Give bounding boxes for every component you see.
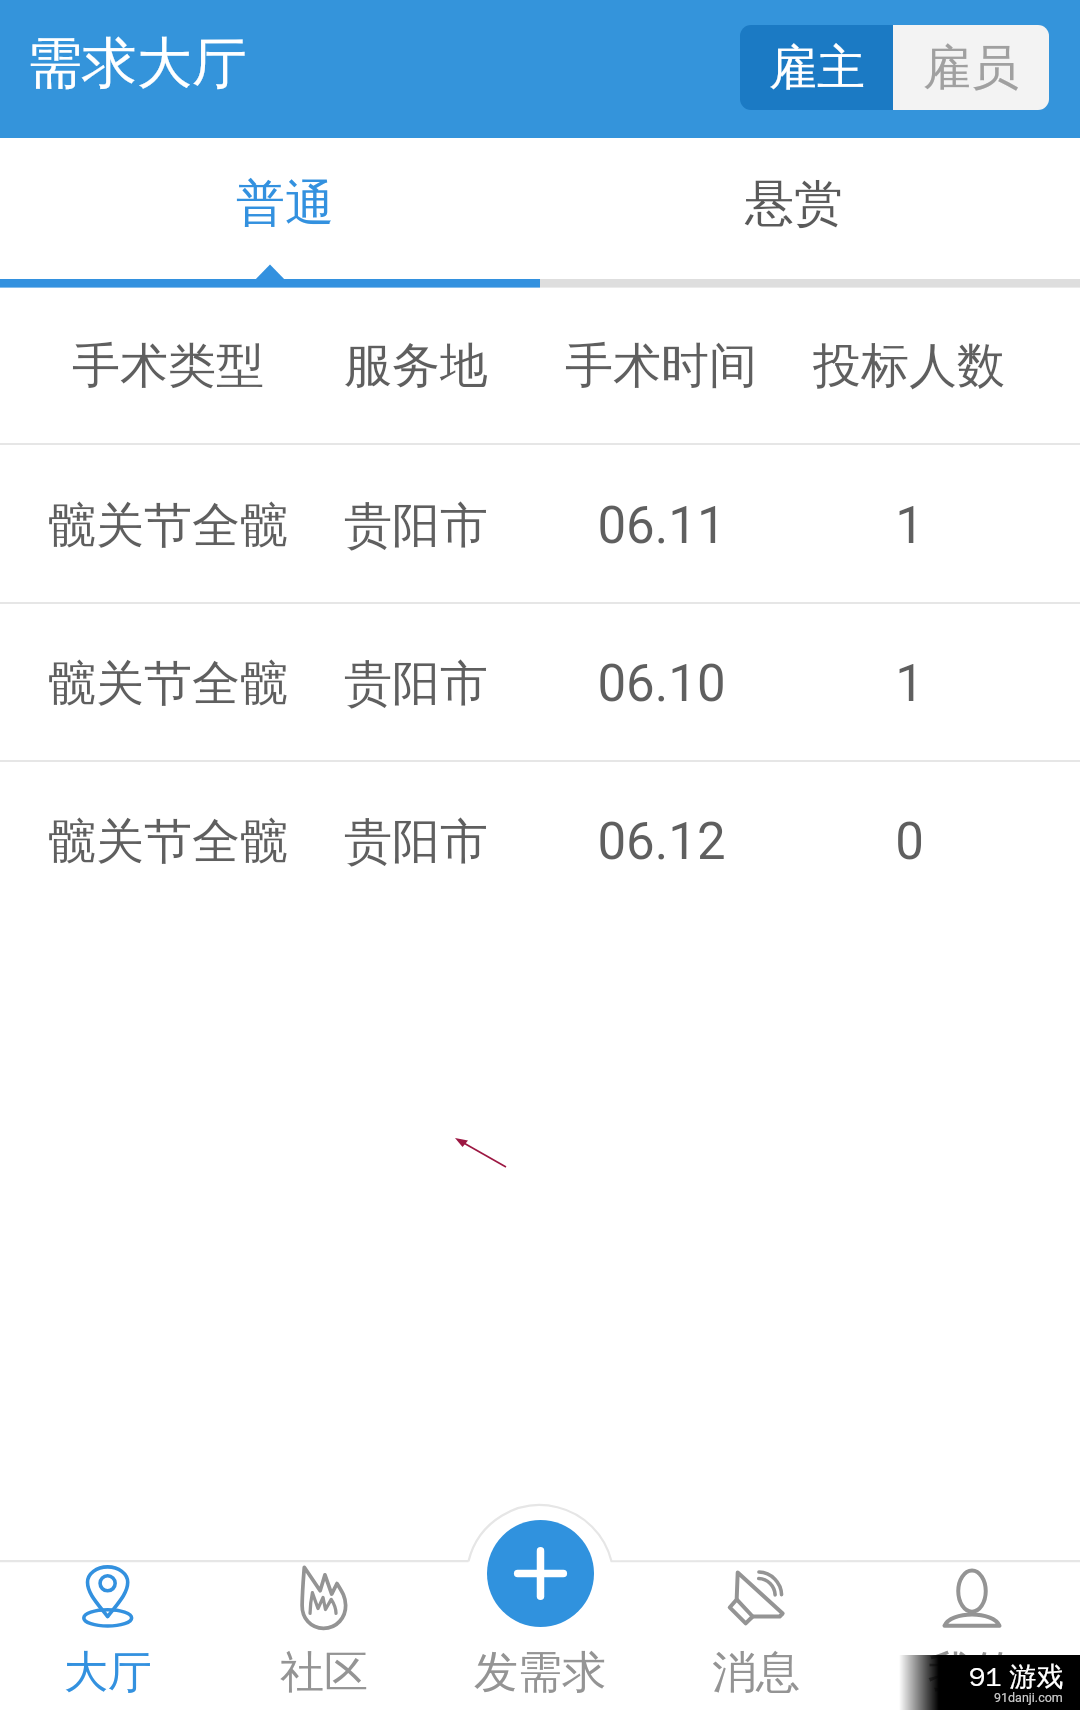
staticText: 髋关节全髋 bbox=[48, 812, 288, 872]
staticText: 06.10 bbox=[597, 654, 726, 714]
other: 大厅 bbox=[76, 1566, 140, 1630]
staticText: 服务地 bbox=[344, 336, 488, 396]
button[interactable]: 髋关节全髋 bbox=[0, 605, 1080, 763]
button[interactable]: 发需求 bbox=[487, 1520, 594, 1627]
button[interactable]: 雇主 bbox=[740, 25, 893, 110]
staticText: 普通 bbox=[236, 173, 334, 235]
button[interactable]: 大厅 bbox=[0, 1560, 216, 1710]
button[interactable]: 普通 bbox=[105, 138, 465, 279]
staticText: 手术时间 bbox=[565, 336, 757, 396]
staticText: 社区 bbox=[280, 1645, 368, 1700]
staticText: 贵阳市 bbox=[344, 654, 488, 714]
button[interactable]: 消息 bbox=[648, 1560, 864, 1710]
staticText: 雇员 bbox=[923, 38, 1019, 98]
staticText: 投标人数 bbox=[813, 336, 1005, 396]
button[interactable]: 髋关节全髋 bbox=[0, 447, 1080, 605]
button[interactable]: 髋关节全髋 bbox=[0, 763, 1080, 921]
staticText: 贵阳市 bbox=[344, 812, 488, 872]
staticText: 手术类型 bbox=[72, 336, 264, 396]
staticText: 06.11 bbox=[597, 496, 726, 556]
button[interactable]: 雇员 bbox=[893, 25, 1049, 110]
other: 我的 bbox=[940, 1566, 1004, 1630]
staticText: 消息 bbox=[712, 1645, 800, 1700]
button[interactable]: 悬赏 bbox=[614, 138, 974, 279]
staticText: 0 bbox=[895, 812, 924, 872]
button[interactable]: 发需求 bbox=[432, 1560, 648, 1710]
staticText: 91 游戏 bbox=[969, 1660, 1064, 1694]
staticText: 髋关节全髋 bbox=[48, 654, 288, 714]
staticText: 髋关节全髋 bbox=[48, 496, 288, 556]
staticText: 贵阳市 bbox=[344, 496, 488, 556]
staticText: 91danji.com bbox=[994, 1690, 1063, 1705]
staticText: 1 bbox=[895, 496, 924, 556]
staticText: 我的 bbox=[928, 1645, 1016, 1700]
staticText: 06.12 bbox=[597, 812, 726, 872]
staticText: 需求大厅 bbox=[27, 29, 247, 98]
staticText: 悬赏 bbox=[745, 173, 843, 235]
staticText: 雇主 bbox=[769, 38, 865, 98]
button[interactable]: 社区 bbox=[216, 1560, 432, 1710]
staticText: 发需求 bbox=[474, 1645, 606, 1700]
staticText: 大厅 bbox=[64, 1645, 152, 1700]
staticText: 1 bbox=[895, 654, 924, 714]
other: 消息 bbox=[724, 1566, 788, 1630]
other: 社区 bbox=[292, 1566, 356, 1630]
button[interactable]: 我的 bbox=[864, 1560, 1080, 1710]
